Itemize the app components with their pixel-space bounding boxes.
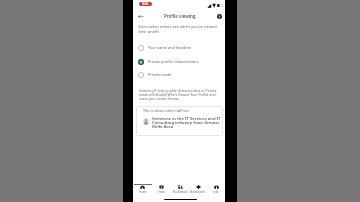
staticText: Notifications xyxy=(190,190,206,194)
staticText: Private profile characteristics xyxy=(148,59,199,64)
staticText: Jobs xyxy=(213,190,219,194)
button[interactable]: Home xyxy=(133,185,152,196)
button[interactable]: Private profile characteristics xyxy=(133,55,225,68)
button[interactable]: Video xyxy=(152,185,171,196)
staticText: 8:26 xyxy=(142,2,149,6)
staticText: Video xyxy=(158,190,165,194)
staticText: Select what others see when you've viewe… xyxy=(138,24,217,34)
button[interactable]: Information xyxy=(213,10,225,22)
button[interactable]: Your name and headline xyxy=(133,41,225,54)
button[interactable]: Private mode xyxy=(133,68,225,81)
staticText: Your name and headline xyxy=(148,45,191,50)
staticText: My Network xyxy=(173,190,188,194)
staticText: Home xyxy=(139,190,147,194)
staticText: This is what others will see xyxy=(143,108,190,113)
staticText: Selecting Private profile characteristic… xyxy=(139,88,224,101)
button[interactable]: My Network xyxy=(171,185,189,196)
staticText: Private mode xyxy=(148,72,172,77)
staticText: Profile viewing xyxy=(164,13,196,19)
button[interactable]: Jobs xyxy=(207,185,225,196)
staticText: Someone in the IT Services and IT Consul… xyxy=(152,116,223,130)
button[interactable]: Back xyxy=(134,10,146,22)
button[interactable]: Notifications xyxy=(189,185,207,196)
